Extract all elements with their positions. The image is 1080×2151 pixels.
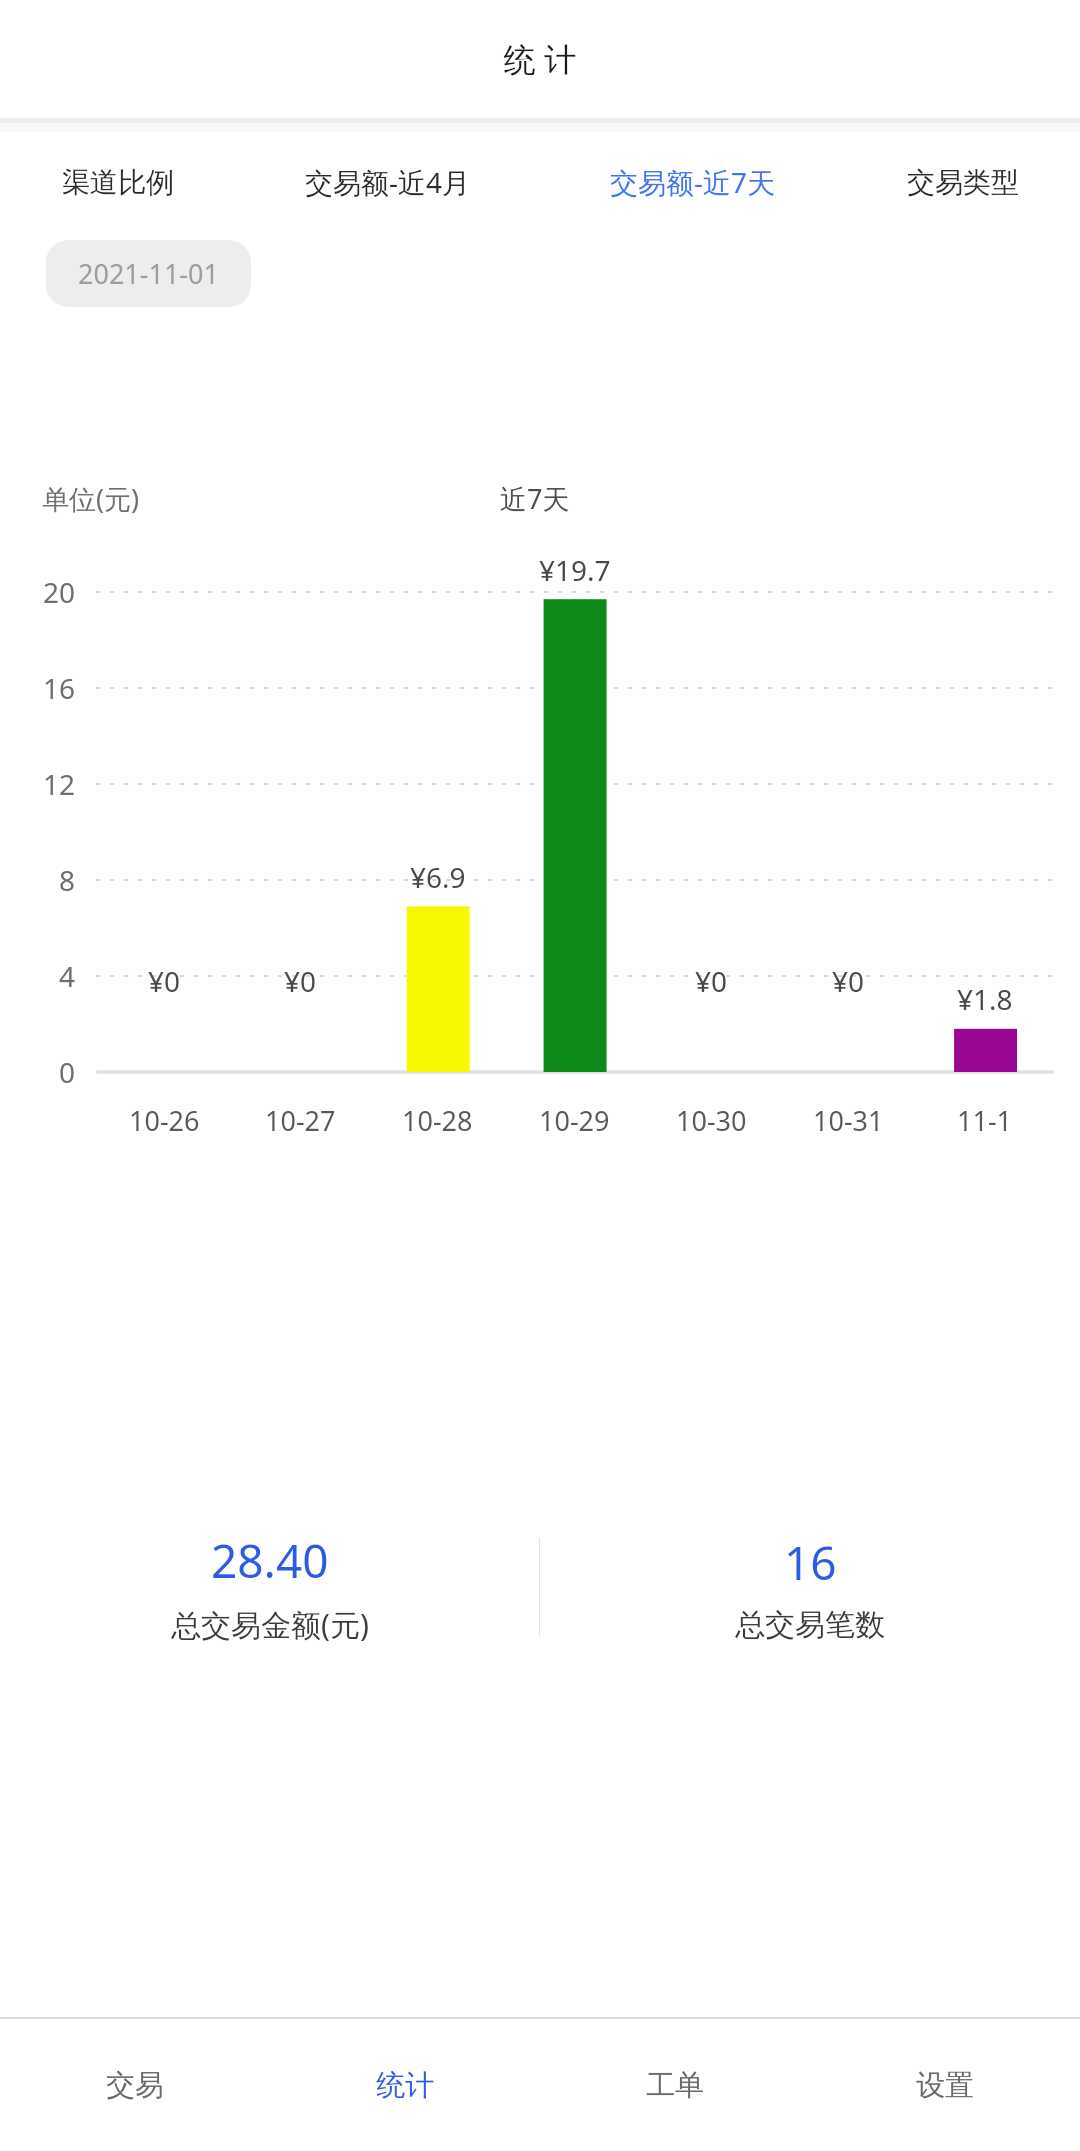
staticText: ¥0 (832, 962, 865, 1000)
button[interactable]: 统计 (270, 2019, 540, 2151)
staticText: 12 (43, 765, 76, 803)
staticText: 10-31 (813, 1102, 884, 1139)
staticText: 交易额-近4月 (305, 163, 471, 201)
staticText: 工单 (646, 2067, 704, 2104)
staticText: 交易 (106, 2067, 164, 2104)
button[interactable]: 2021-11-01 (46, 240, 251, 307)
staticText: 16 (784, 1531, 837, 1594)
staticText: 渠道比例 (62, 165, 174, 200)
button[interactable]: 设置 (810, 2019, 1080, 2151)
staticText: 10-28 (402, 1102, 473, 1139)
staticText: 10-29 (539, 1102, 610, 1139)
button[interactable]: 28.40 (0, 1489, 539, 1685)
staticText: 单位(元) (42, 480, 140, 517)
staticText: 总交易金额(元) (171, 1604, 369, 1645)
staticText: 设置 (916, 2067, 974, 2104)
staticText: 10-30 (676, 1102, 747, 1139)
button[interactable]: 交易额-近7天 (540, 132, 845, 232)
staticText: 16 (43, 669, 76, 707)
staticText: 28.40 (211, 1529, 329, 1592)
staticText: ¥0 (695, 962, 728, 1000)
button[interactable]: 16 (540, 1489, 1080, 1685)
staticText: 统计 (376, 2067, 434, 2104)
staticText: 2021-11-01 (78, 255, 219, 292)
staticText: 20 (43, 573, 76, 611)
staticText: 总交易笔数 (735, 1606, 885, 1644)
button[interactable]: 交易 (0, 2019, 270, 2151)
staticText: 统 计 (504, 37, 577, 81)
staticText: 0 (59, 1053, 76, 1091)
staticText: ¥0 (284, 962, 317, 1000)
staticText: 近7天 (500, 480, 570, 517)
button[interactable]: 渠道比例 (0, 132, 235, 232)
button[interactable]: 交易类型 (845, 132, 1080, 232)
staticText: 10-27 (265, 1102, 336, 1139)
staticText: 8 (59, 861, 76, 899)
staticText: 11-1 (957, 1102, 1013, 1139)
staticText: 交易类型 (907, 165, 1019, 200)
staticText: ¥1.8 (957, 980, 1013, 1018)
staticText: 交易额-近7天 (610, 163, 776, 201)
staticText: ¥19.7 (539, 551, 611, 589)
staticText: 10-26 (129, 1102, 200, 1139)
button[interactable]: 交易额-近4月 (235, 132, 540, 232)
button[interactable]: 工单 (540, 2019, 810, 2151)
staticText: 4 (59, 957, 76, 995)
staticText: ¥6.9 (410, 858, 466, 896)
staticText: ¥0 (148, 962, 181, 1000)
